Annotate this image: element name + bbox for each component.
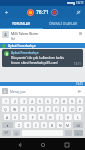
button[interactable]: 9 <box>69 98 75 104</box>
staticText: E <box>23 107 25 112</box>
staticText: Bünyamin'i de çok kullandırın bahis <box>11 56 64 60</box>
staticText: 1 <box>5 99 7 104</box>
staticText: F <box>32 115 34 120</box>
button[interactable]: X <box>24 122 31 128</box>
button[interactable]: U <box>53 106 59 112</box>
button[interactable]: Aykut Fenerbahçe <box>2 49 83 67</box>
button[interactable]: ☺ <box>13 130 20 136</box>
staticText: 13:11 <box>76 1 84 5</box>
button[interactable]: ⌫ <box>73 122 83 128</box>
staticText: ☺ <box>15 132 19 135</box>
button[interactable]: C <box>33 122 39 128</box>
button[interactable]: Q <box>2 106 9 112</box>
button[interactable]: 5 <box>37 98 43 104</box>
button[interactable]: 0 <box>77 98 83 104</box>
staticText: L <box>77 115 79 120</box>
button[interactable]: I <box>61 106 67 112</box>
staticText: P <box>79 107 82 112</box>
staticText: ⌫ <box>76 124 81 127</box>
button[interactable]: H <box>47 114 54 120</box>
staticText: Aykut Fenerbahçe <box>8 44 36 48</box>
staticText: 5 <box>39 99 41 104</box>
staticText: 8 <box>63 99 65 104</box>
button[interactable]: 1 <box>2 98 9 104</box>
staticText: !#1 <box>4 131 9 135</box>
button[interactable]: G <box>38 114 45 120</box>
button[interactable]: B <box>49 122 55 128</box>
button[interactable]: Attach image <box>2 88 8 94</box>
button[interactable]: More options <box>78 31 83 36</box>
staticText: 76:71 <box>36 9 49 16</box>
button[interactable]: 4 <box>29 98 35 104</box>
button[interactable]: ↵ <box>74 130 83 136</box>
button[interactable]: Mesaj yaz <box>10 89 76 94</box>
staticText: U <box>55 107 58 112</box>
button[interactable]: E <box>20 106 27 112</box>
staticText: B <box>51 123 54 128</box>
staticText: 4 <box>31 99 33 104</box>
button[interactable]: ÖNEMLİ OLAYLAR <box>42 18 85 28</box>
staticText: Milli Takım Bizim <box>11 31 39 36</box>
button[interactable]: !#1 <box>2 130 11 136</box>
button[interactable]: M <box>65 122 71 128</box>
staticText: 9 <box>71 99 73 104</box>
staticText: ÖNEMLİ OLAYLAR <box>49 21 78 25</box>
button[interactable]: Send <box>76 88 83 95</box>
staticText: Y <box>47 107 49 112</box>
staticText: O <box>71 107 74 112</box>
button[interactable]: 8 <box>61 98 67 104</box>
button[interactable]: T <box>37 106 43 112</box>
staticText: 13:11 <box>74 62 81 66</box>
button[interactable]: D <box>20 114 27 120</box>
button[interactable]: YORUMLAR <box>0 18 42 28</box>
button[interactable]: Milli Takım Bizim <box>0 29 85 43</box>
button[interactable]: Z <box>15 122 22 128</box>
staticText: J <box>59 115 60 120</box>
staticText: Q <box>4 107 7 112</box>
button[interactable]: Y <box>45 106 51 112</box>
staticText: R <box>31 107 34 112</box>
staticText: G <box>40 115 43 120</box>
staticText: 13:11 <box>76 82 83 86</box>
staticText: 6 <box>47 99 49 104</box>
button[interactable]: R <box>29 106 35 112</box>
button[interactable]: Recent apps <box>62 140 71 149</box>
staticText: I <box>63 107 65 112</box>
button[interactable]: K <box>65 114 72 120</box>
staticText: N <box>59 123 62 128</box>
button[interactable]: O <box>69 106 75 112</box>
button[interactable]: 3 <box>20 98 27 104</box>
button[interactable]: Notifications off <box>74 8 83 17</box>
button[interactable]: W <box>11 106 18 112</box>
button[interactable]: F <box>29 114 36 120</box>
staticText: Z <box>18 123 20 128</box>
staticText: forum sitesi fenerbahçe35.com' <box>11 61 59 65</box>
staticText: V <box>43 123 46 128</box>
button[interactable]: Aykut Fenerbahçe <box>0 43 85 48</box>
staticText: S <box>14 115 16 120</box>
button[interactable]: 2 <box>11 98 18 104</box>
button[interactable]: Back <box>2 8 11 17</box>
button[interactable]: L <box>74 114 81 120</box>
button[interactable]: V <box>41 122 47 128</box>
staticText: A <box>6 115 9 120</box>
staticText: 0 <box>79 99 81 104</box>
button[interactable]: ⬆ <box>2 122 13 128</box>
button[interactable]: J <box>56 114 63 120</box>
staticText: C <box>35 123 38 128</box>
button[interactable]: Home <box>38 140 47 149</box>
button[interactable]: 6 <box>45 98 51 104</box>
staticText: YORUMLAR <box>12 21 30 25</box>
staticText: . <box>68 131 69 135</box>
button[interactable]: S <box>12 114 18 120</box>
staticText: M <box>66 123 70 128</box>
button[interactable]: Back <box>15 140 24 149</box>
button[interactable]: A <box>4 114 10 120</box>
button[interactable]: P <box>77 106 83 112</box>
staticText: W <box>13 107 17 112</box>
button[interactable]: 7 <box>53 98 59 104</box>
staticText: Mesaj yaz <box>10 89 26 94</box>
button[interactable]: N <box>57 122 63 128</box>
